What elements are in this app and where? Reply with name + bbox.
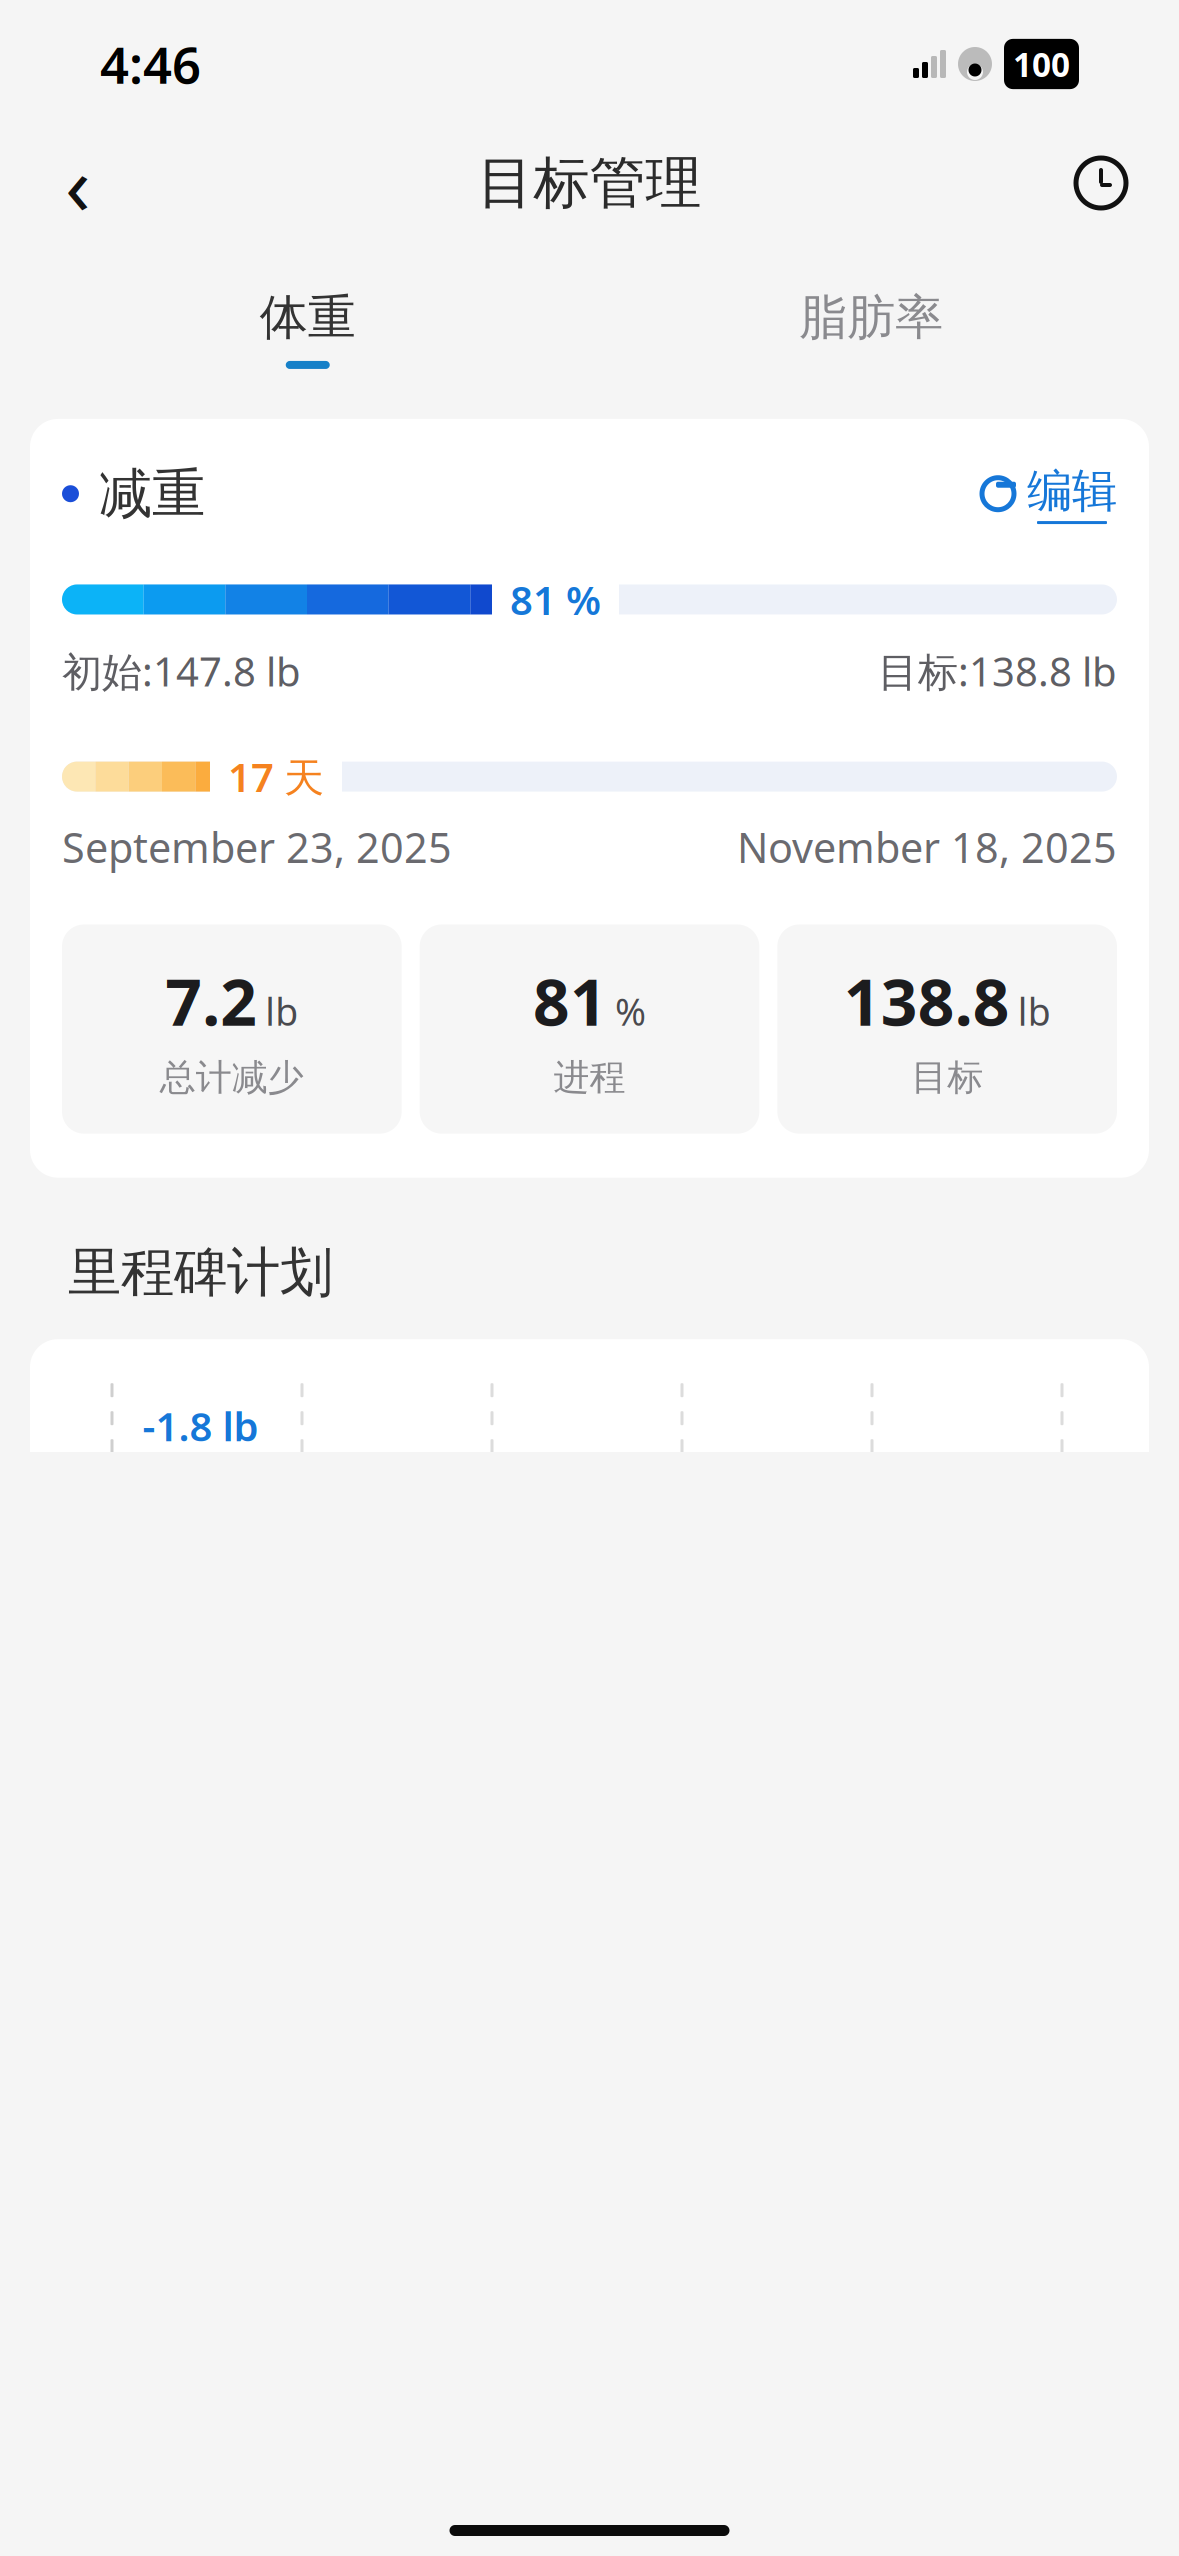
staticText: 目标管理 [477, 149, 701, 217]
staticText: November 18, 2025 [737, 820, 1117, 874]
staticText: 目标:138.8 lb [878, 644, 1117, 698]
staticText: 编辑 [1027, 463, 1117, 519]
staticText: 进程 [553, 1055, 625, 1100]
button[interactable]: 脂肪率 [589, 278, 1153, 379]
staticText: 138.8 [844, 958, 1010, 1043]
staticText: 体重 [260, 288, 356, 347]
staticText: 7.2 [165, 958, 257, 1043]
staticText: ‹ [65, 128, 91, 238]
staticText: 目标 [911, 1055, 983, 1100]
staticText: 81 % [510, 573, 601, 626]
button[interactable]: 体重 [26, 278, 589, 379]
staticText: lb [265, 986, 298, 1036]
button[interactable]: 编辑 [979, 463, 1117, 524]
staticText: 里程碑计划 [68, 1240, 333, 1305]
staticText: 17 天 [228, 750, 324, 803]
staticText: % [615, 986, 646, 1036]
staticText: 脂肪率 [799, 288, 943, 347]
staticText: 81 [533, 958, 607, 1043]
staticText: 初始:147.8 lb [62, 644, 301, 698]
staticText: 总计减少 [160, 1055, 304, 1100]
staticText: 减重 [99, 461, 205, 526]
staticText: 100 [1013, 42, 1070, 86]
staticText: -1.8 lb [142, 1399, 258, 1452]
staticText: lb [1018, 986, 1051, 1036]
button[interactable]: 返回 [38, 143, 118, 223]
staticText: 4:46 [100, 30, 201, 98]
button[interactable]: 历史记录 [1061, 143, 1141, 223]
staticText: September 23, 2025 [62, 820, 452, 874]
